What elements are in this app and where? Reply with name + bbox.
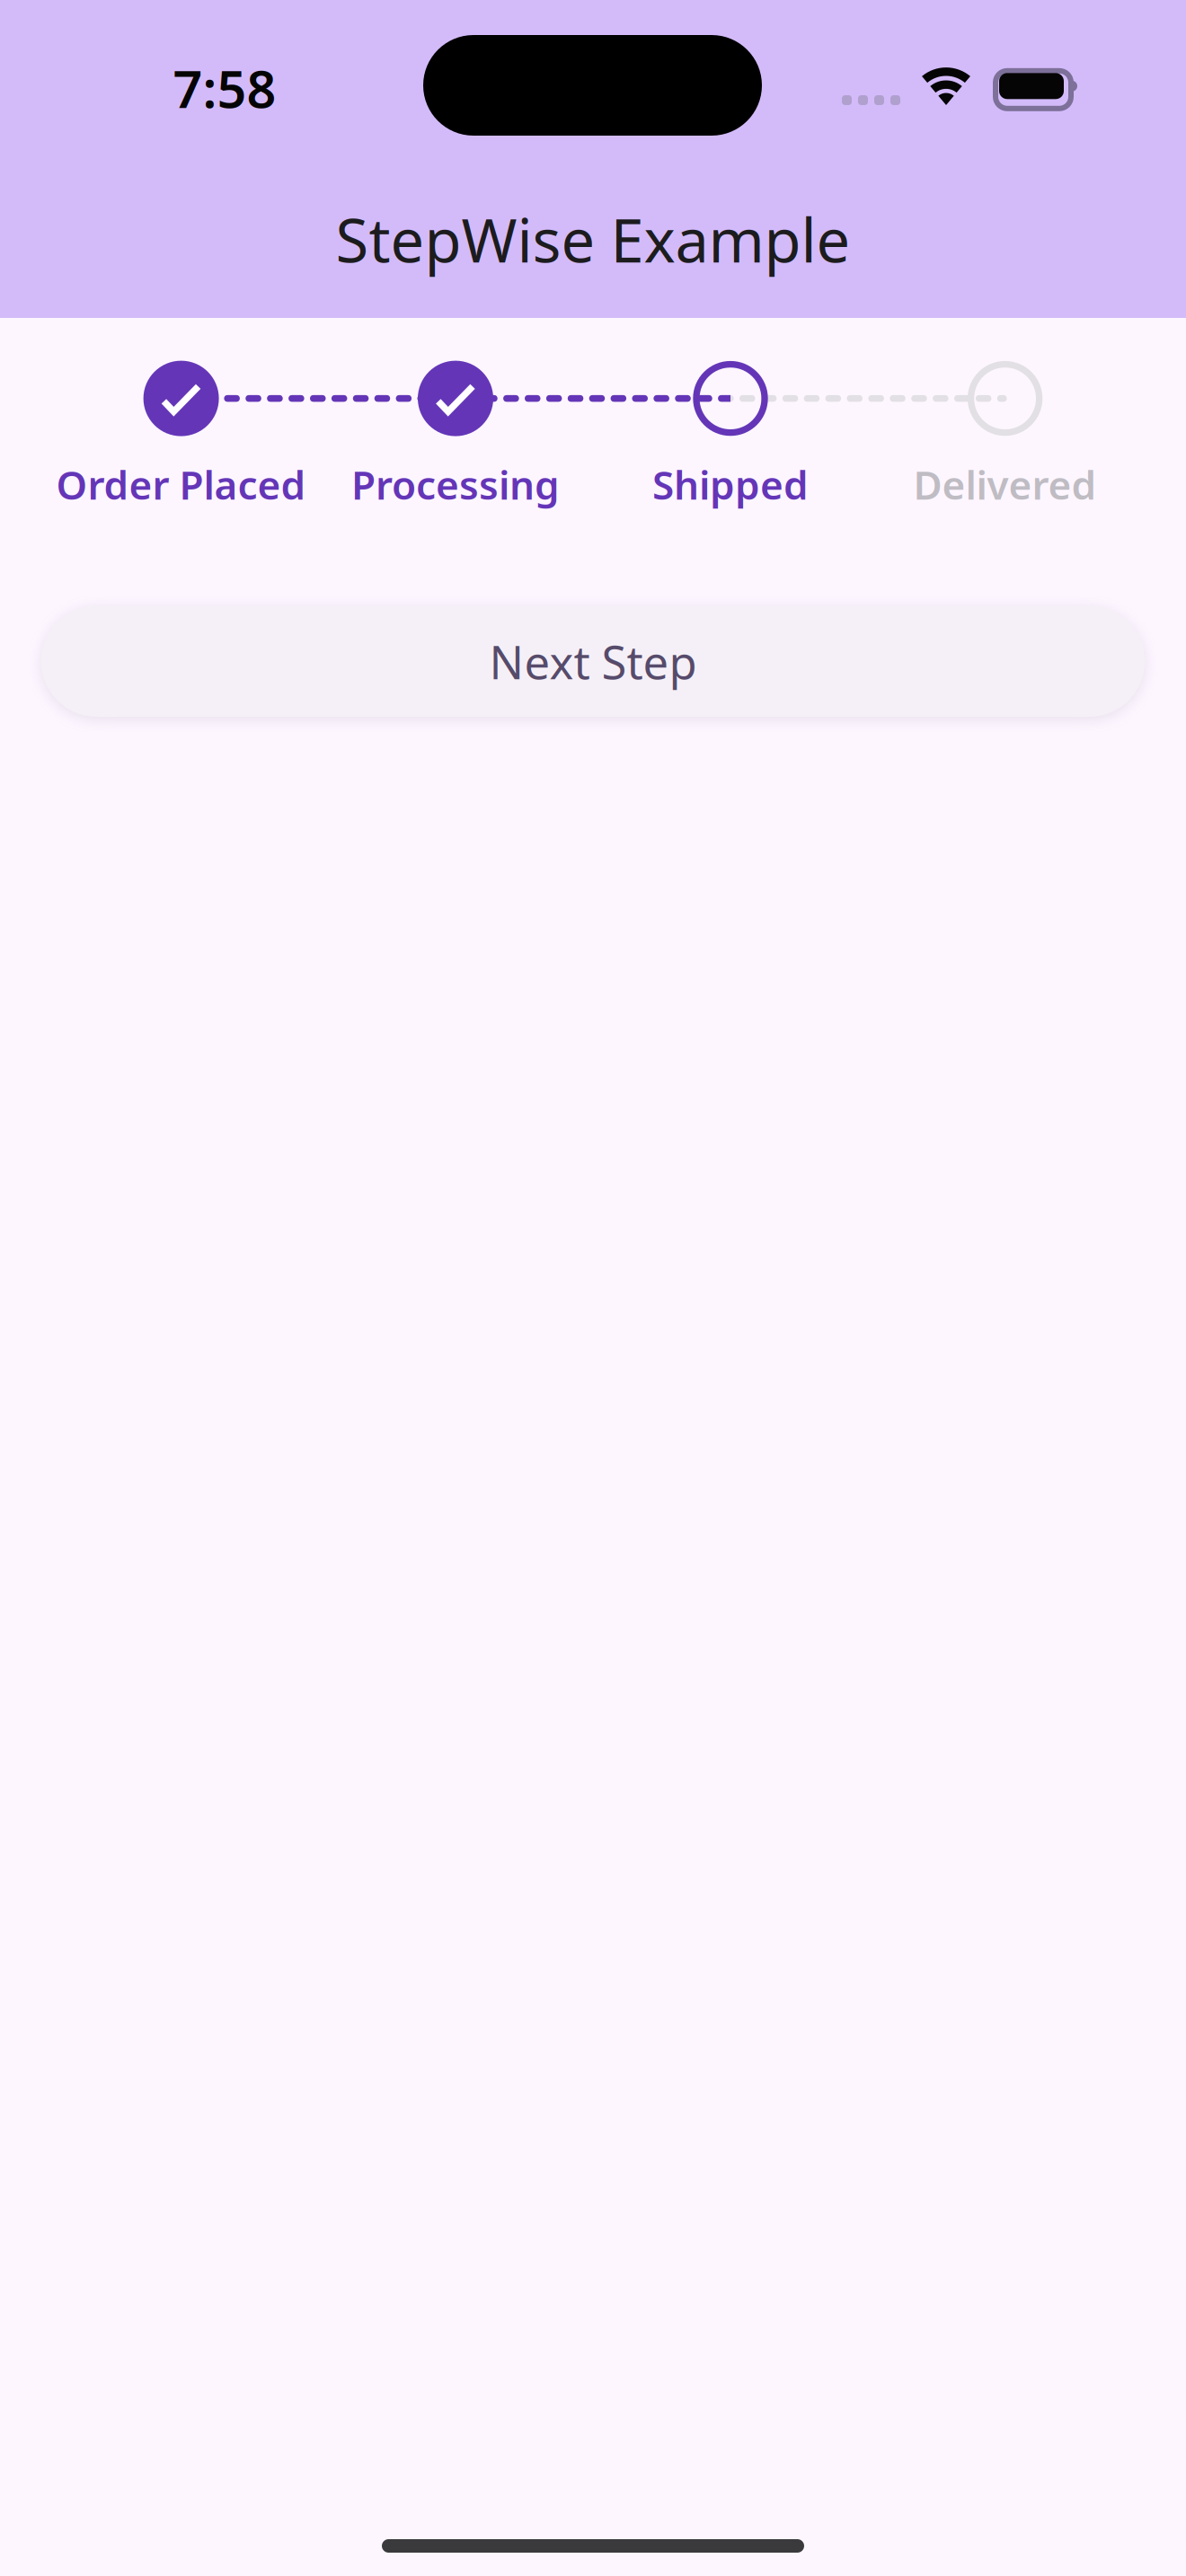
staticText: Delivered: [913, 458, 1097, 511]
button[interactable]: Next Step: [41, 606, 1145, 717]
staticText: Shipped: [652, 458, 809, 511]
staticText: 7:58: [173, 54, 276, 122]
staticText: Order Placed: [56, 458, 306, 511]
staticText: Processing: [351, 458, 560, 511]
staticText: StepWise Example: [336, 199, 850, 279]
staticText: Next Step: [489, 631, 697, 692]
